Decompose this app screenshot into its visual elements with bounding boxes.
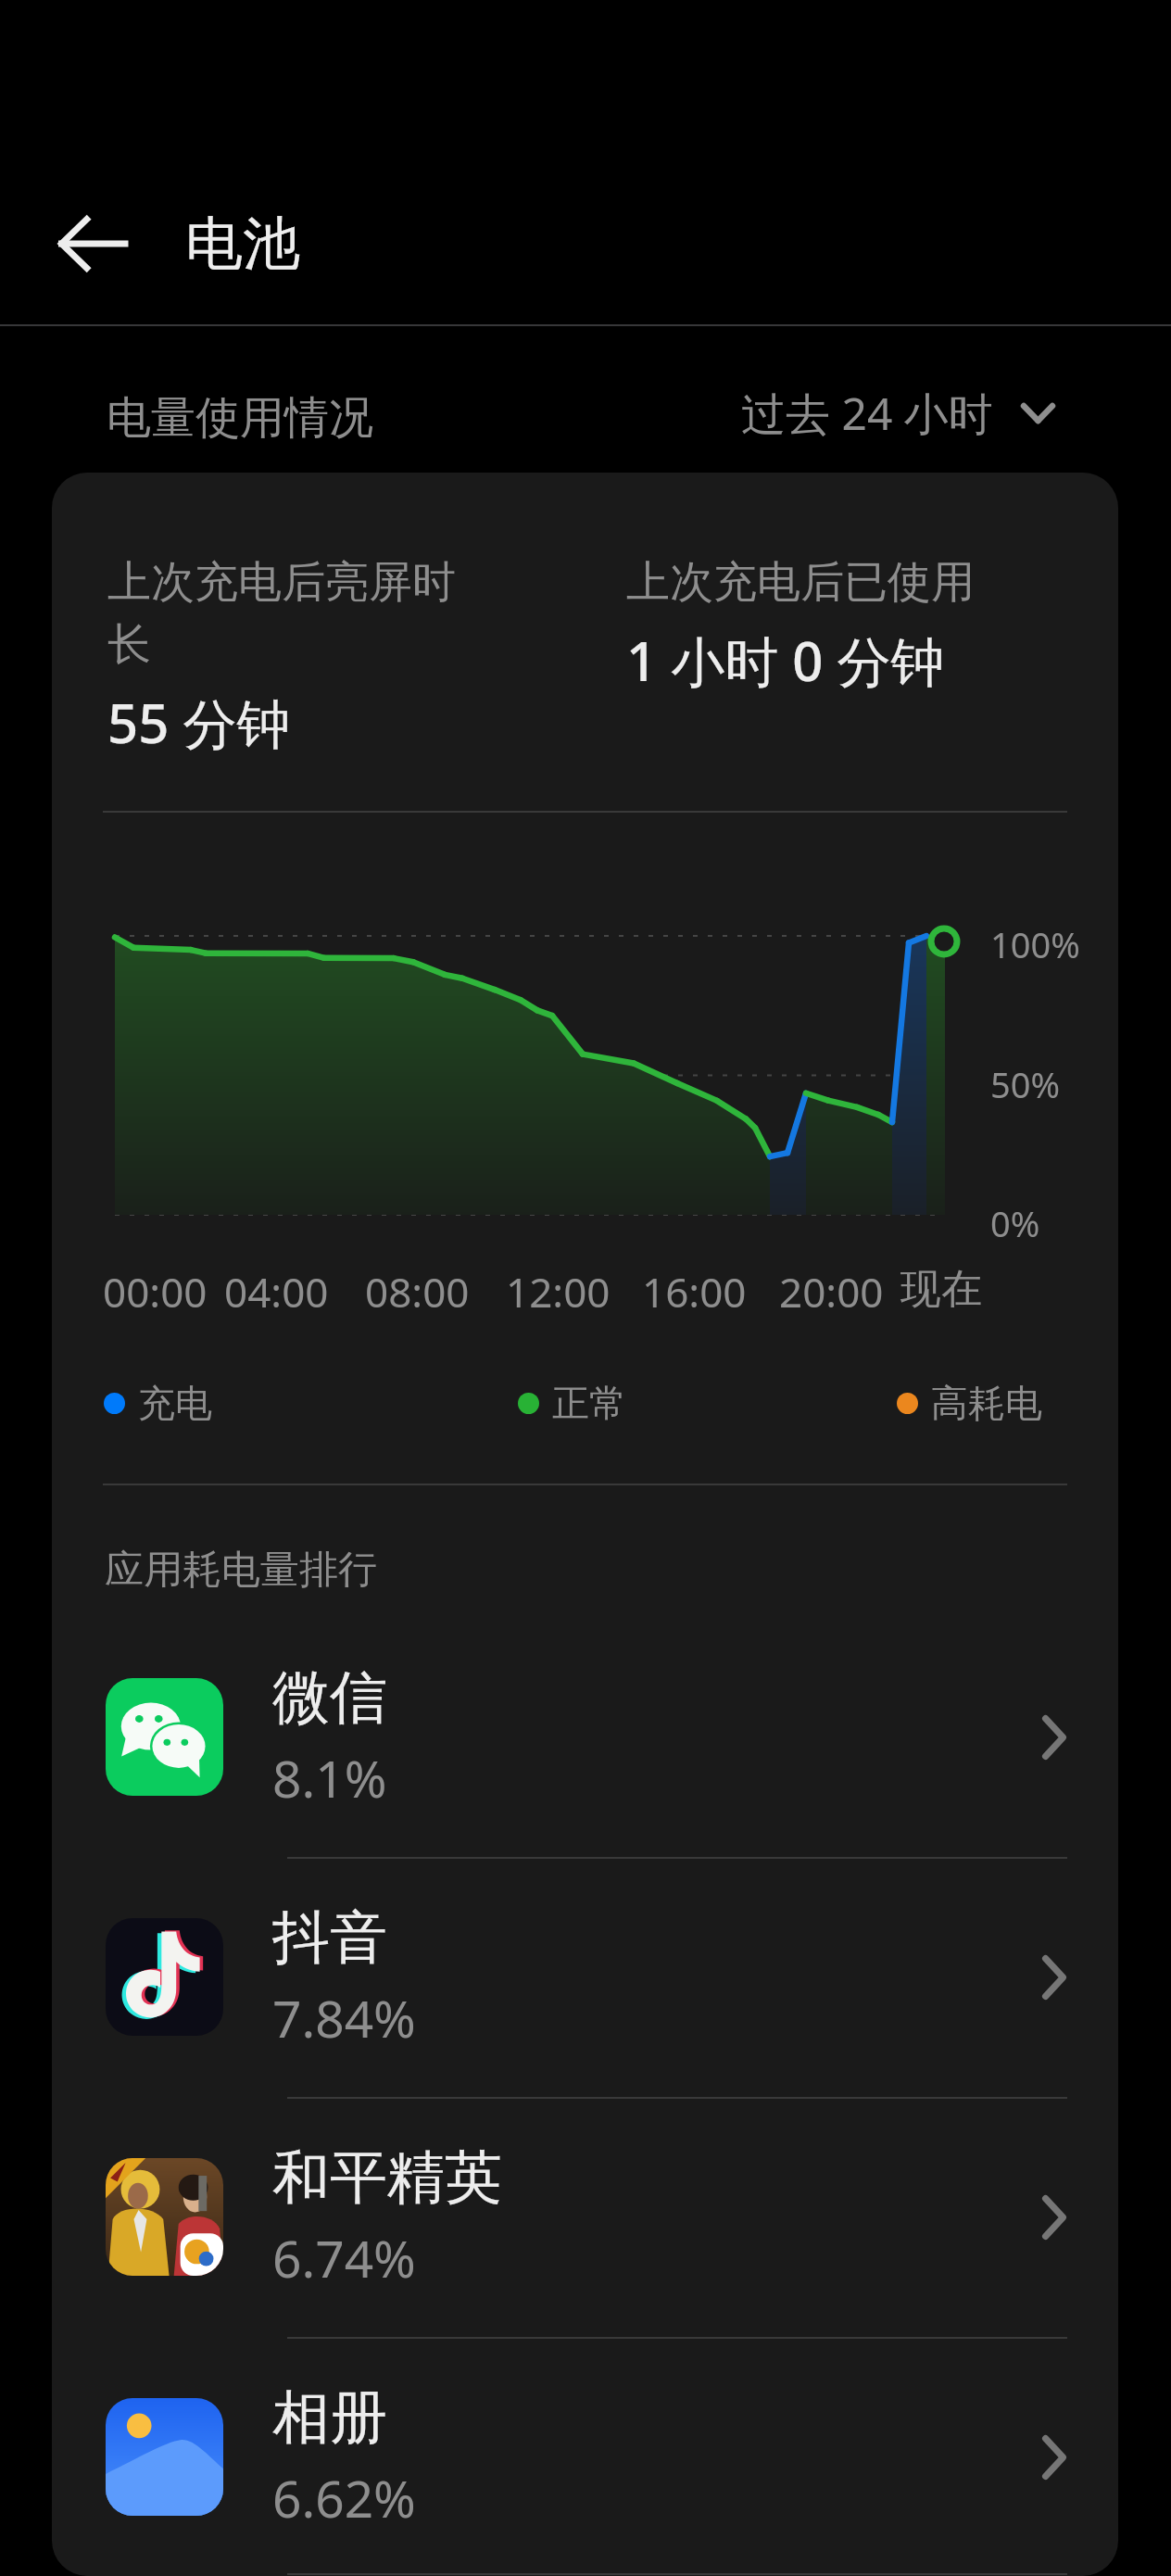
- staticText: 相册: [272, 2381, 387, 2454]
- button[interactable]: 微信: [52, 1617, 1118, 1857]
- button[interactable]: Back: [37, 211, 148, 276]
- staticText: 7.84%: [272, 1983, 416, 2052]
- staticText: 上次充电后已使用: [626, 555, 975, 610]
- staticText: 08:00: [365, 1264, 470, 1320]
- staticText: 现在: [900, 1264, 982, 1315]
- staticText: 1 小时 0 分钟: [626, 624, 945, 697]
- staticText: 16:00: [642, 1264, 747, 1320]
- staticText: 抖音: [272, 1901, 387, 1974]
- staticText: 0%: [990, 1199, 1040, 1247]
- button[interactable]: 相册: [52, 2337, 1118, 2576]
- staticText: 6.62%: [272, 2463, 416, 2532]
- button[interactable]: 过去 24 小时: [732, 378, 1064, 448]
- staticText: 20:00: [779, 1264, 884, 1320]
- staticText: 微信: [272, 1661, 387, 1734]
- staticText: 和平精英: [272, 2141, 502, 2214]
- staticText: 12:00: [506, 1264, 611, 1320]
- staticText: 电量使用情况: [107, 390, 373, 446]
- staticText: 高耗电: [931, 1380, 1042, 1426]
- staticText: 充电: [138, 1380, 212, 1426]
- staticText: 8.1%: [272, 1743, 387, 1812]
- staticText: 04:00: [224, 1264, 329, 1320]
- staticText: 55 分钟: [107, 686, 291, 759]
- staticText: 6.74%: [272, 2223, 416, 2292]
- staticText: 电池: [185, 208, 300, 280]
- button[interactable]: 和平精英: [52, 2097, 1118, 2337]
- button[interactable]: 抖音: [52, 1857, 1118, 2097]
- staticText: 应用耗电量排行: [105, 1546, 377, 1595]
- staticText: 上次充电后亮屏时长: [107, 555, 478, 672]
- staticText: 50%: [990, 1060, 1061, 1108]
- staticText: 00:00: [103, 1264, 208, 1320]
- staticText: 正常: [552, 1380, 626, 1426]
- staticText: 过去 24 小时: [741, 383, 993, 444]
- staticText: 100%: [990, 920, 1080, 968]
